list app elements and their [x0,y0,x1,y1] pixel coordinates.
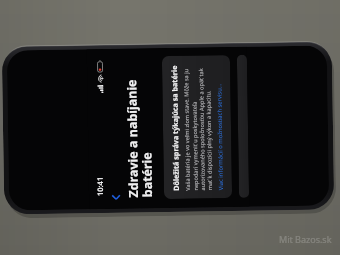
staticText: Mit Bazos.sk [279,233,332,245]
staticText: Viac informácií o možnostiach servisu... [215,83,225,190]
staticText: 10:41 [95,176,105,196]
button[interactable]: Späť [109,191,123,204]
button[interactable]: Maximálna kapacita [237,55,249,198]
staticText: Zdravie a nabíjanie batérie [123,58,156,198]
button[interactable]: Viac informácií o možnostiach servisu... [215,83,225,190]
staticText: Vaša batéria je vo veľmi zlom stave. Môž… [182,63,213,191]
staticText: Dôležitá správa týkajúca sa batérie [169,65,181,191]
